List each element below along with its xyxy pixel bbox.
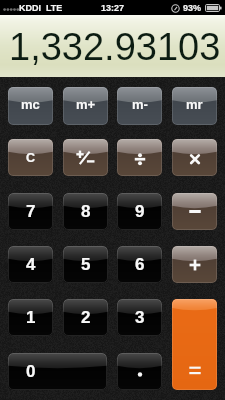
- staticText: 2: [81, 308, 91, 327]
- staticText: 3: [135, 308, 145, 327]
- staticText: 0: [26, 362, 36, 381]
- button[interactable]: Multiply: [172, 139, 217, 176]
- staticText: mr: [186, 97, 203, 112]
- other: Rotation lock: [171, 4, 180, 13]
- staticText: C: [26, 151, 36, 165]
- button[interactable]: 8: [63, 193, 108, 230]
- staticText: KDDI: [19, 3, 41, 13]
- staticText: 13:27: [101, 3, 125, 13]
- button[interactable]: Plus: [172, 246, 217, 283]
- button[interactable]: Equals: [172, 299, 217, 390]
- button[interactable]: 0: [8, 353, 107, 390]
- staticText: mc: [21, 97, 40, 112]
- staticText: LTE: [46, 3, 63, 13]
- staticText: 4: [26, 255, 36, 274]
- other: Battery 93 percent: [205, 4, 222, 12]
- button[interactable]: Plus minus: [63, 139, 108, 176]
- button[interactable]: 1: [8, 299, 53, 336]
- button[interactable]: 7: [8, 193, 53, 230]
- button[interactable]: mc: [8, 87, 53, 125]
- button[interactable]: 4: [8, 246, 53, 283]
- button[interactable]: 9: [117, 193, 162, 230]
- staticText: 5: [81, 255, 91, 274]
- staticText: 9: [135, 202, 145, 221]
- button[interactable]: Clear: [8, 139, 53, 176]
- staticText: 1: [26, 308, 36, 327]
- staticText: 7: [26, 202, 36, 221]
- button[interactable]: 2: [63, 299, 108, 336]
- staticText: 93%: [183, 3, 202, 13]
- staticText: m-: [132, 97, 148, 112]
- button[interactable]: 3: [117, 299, 162, 336]
- staticText: 1,332.93103: [9, 26, 221, 68]
- button[interactable]: 6: [117, 246, 162, 283]
- button[interactable]: m-: [117, 87, 162, 125]
- button[interactable]: m+: [63, 87, 108, 125]
- staticText: m+: [76, 97, 96, 112]
- button[interactable]: mr: [172, 87, 217, 125]
- button[interactable]: Divide: [117, 139, 162, 176]
- button[interactable]: Minus: [172, 193, 217, 230]
- button[interactable]: Decimal point: [117, 353, 162, 390]
- staticText: 8: [81, 202, 91, 221]
- button[interactable]: 5: [63, 246, 108, 283]
- staticText: 6: [135, 255, 145, 274]
